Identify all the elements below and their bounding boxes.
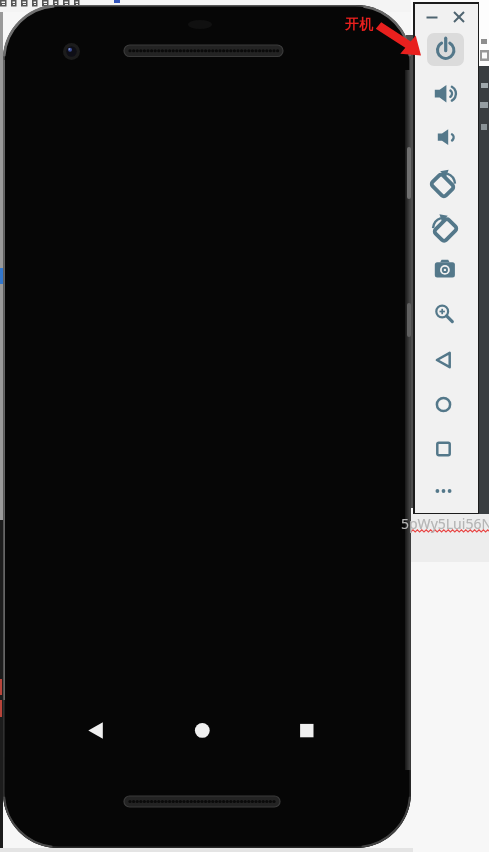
button[interactable] (424, 429, 465, 470)
button[interactable] (81, 716, 111, 746)
button[interactable] (424, 118, 465, 159)
button[interactable] (424, 295, 465, 336)
button[interactable] (451, 9, 467, 25)
button[interactable] (424, 251, 465, 292)
staticText: 5pWy5Lui56N (401, 514, 489, 533)
staticText: 开机 (345, 16, 373, 34)
button[interactable] (424, 73, 465, 114)
button[interactable] (427, 33, 464, 66)
button[interactable] (424, 340, 465, 381)
button[interactable] (424, 384, 465, 425)
button[interactable] (424, 162, 465, 203)
button[interactable] (424, 9, 440, 25)
button[interactable] (292, 716, 322, 746)
button[interactable] (424, 207, 465, 248)
button[interactable] (187, 716, 217, 746)
button[interactable] (424, 471, 465, 512)
